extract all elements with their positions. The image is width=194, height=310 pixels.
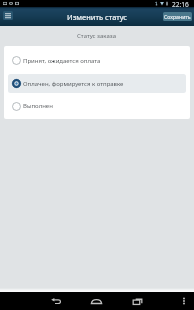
- button[interactable]: More options: [178, 292, 190, 310]
- staticText: Сохранить: [164, 13, 191, 20]
- staticText: Статус заказа: [77, 32, 117, 40]
- button[interactable]: Home: [86, 292, 106, 310]
- staticText: Выполнен: [23, 102, 53, 110]
- staticText: Изменить статус: [67, 12, 128, 22]
- button[interactable]: Back: [46, 292, 66, 310]
- staticText: Оплачен, формируется к отправке: [23, 80, 124, 88]
- button[interactable]: Выполнен: [8, 97, 186, 115]
- button[interactable]: Сохранить: [163, 12, 192, 21]
- button[interactable]: Menu: [3, 11, 13, 20]
- staticText: Принят, ожидается оплата: [23, 57, 101, 65]
- button[interactable]: Оплачен, формируется к отправке: [8, 74, 186, 93]
- button[interactable]: Recent apps: [127, 292, 147, 310]
- button[interactable]: Принят, ожидается оплата: [8, 51, 186, 70]
- staticText: 22:16: [172, 0, 189, 7]
